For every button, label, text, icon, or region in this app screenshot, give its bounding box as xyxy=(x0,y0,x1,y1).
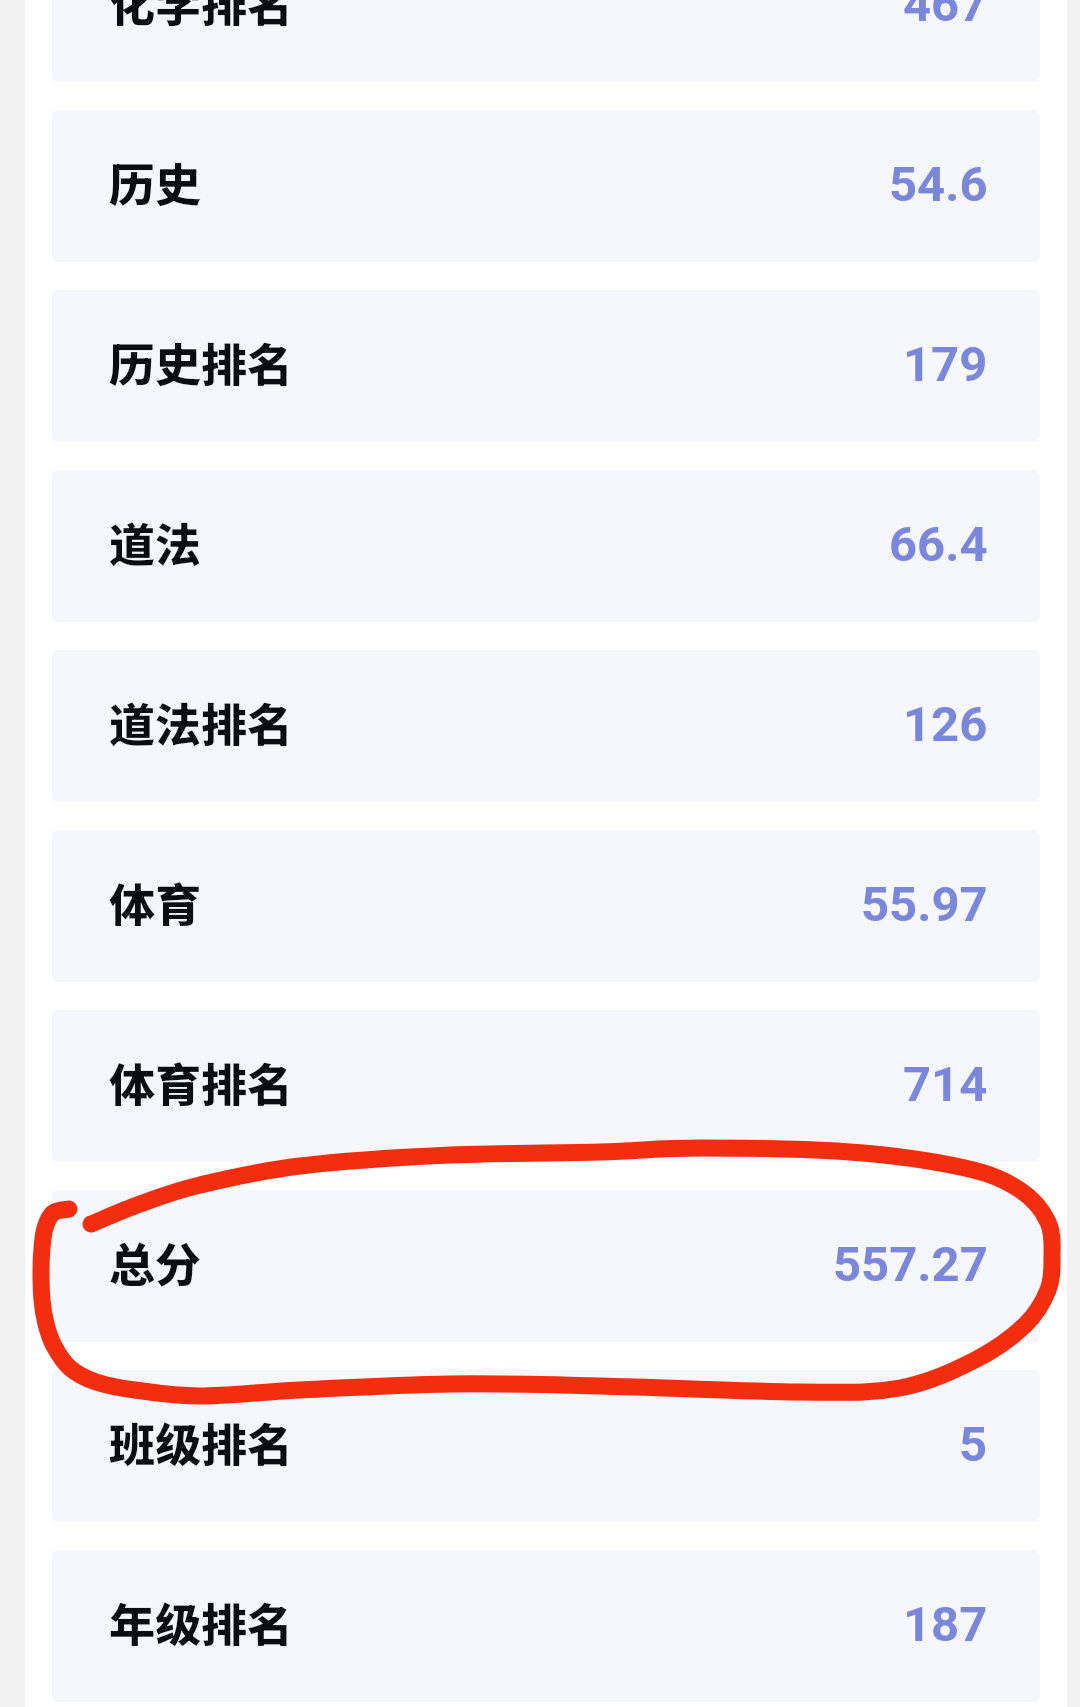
button[interactable]: 总分 xyxy=(52,1190,1040,1342)
button[interactable]: 历史 xyxy=(52,110,1040,262)
staticText: 历史 xyxy=(109,149,201,216)
other: Highlighted total score xyxy=(0,0,1080,1707)
button[interactable]: 年级排名 xyxy=(52,1550,1040,1702)
staticText: 54.6 xyxy=(889,156,988,213)
button[interactable]: 体育排名 xyxy=(52,1010,1040,1162)
staticText: 总分 xyxy=(109,1229,201,1296)
staticText: 年级排名 xyxy=(109,1589,293,1656)
button[interactable]: 化学排名 xyxy=(52,0,1040,82)
staticText: 班级排名 xyxy=(109,1409,293,1476)
staticText: 714 xyxy=(903,1056,988,1113)
staticText: 467 xyxy=(903,0,988,33)
staticText: 历史排名 xyxy=(109,329,293,396)
staticText: 体育 xyxy=(109,869,201,936)
staticText: 557.27 xyxy=(833,1236,988,1293)
staticText: 道法排名 xyxy=(109,689,293,756)
staticText: 化学排名 xyxy=(109,0,293,36)
staticText: 187 xyxy=(903,1596,988,1653)
staticText: 126 xyxy=(903,696,988,753)
staticText: 体育排名 xyxy=(109,1049,293,1116)
button[interactable]: 体育 xyxy=(52,830,1040,982)
staticText: 55.97 xyxy=(861,876,988,933)
button[interactable]: 道法排名 xyxy=(52,650,1040,802)
staticText: 66.4 xyxy=(889,516,988,573)
button[interactable]: 道法 xyxy=(52,470,1040,622)
staticText: 5 xyxy=(959,1416,988,1473)
staticText: 179 xyxy=(903,336,988,393)
staticText: 道法 xyxy=(109,509,201,576)
button[interactable]: 班级排名 xyxy=(52,1370,1040,1522)
button[interactable]: 历史排名 xyxy=(52,290,1040,442)
